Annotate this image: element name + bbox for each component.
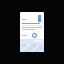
button[interactable]: Status indicator <box>20 12 44 52</box>
button[interactable]: Status indicator <box>32 33 37 38</box>
